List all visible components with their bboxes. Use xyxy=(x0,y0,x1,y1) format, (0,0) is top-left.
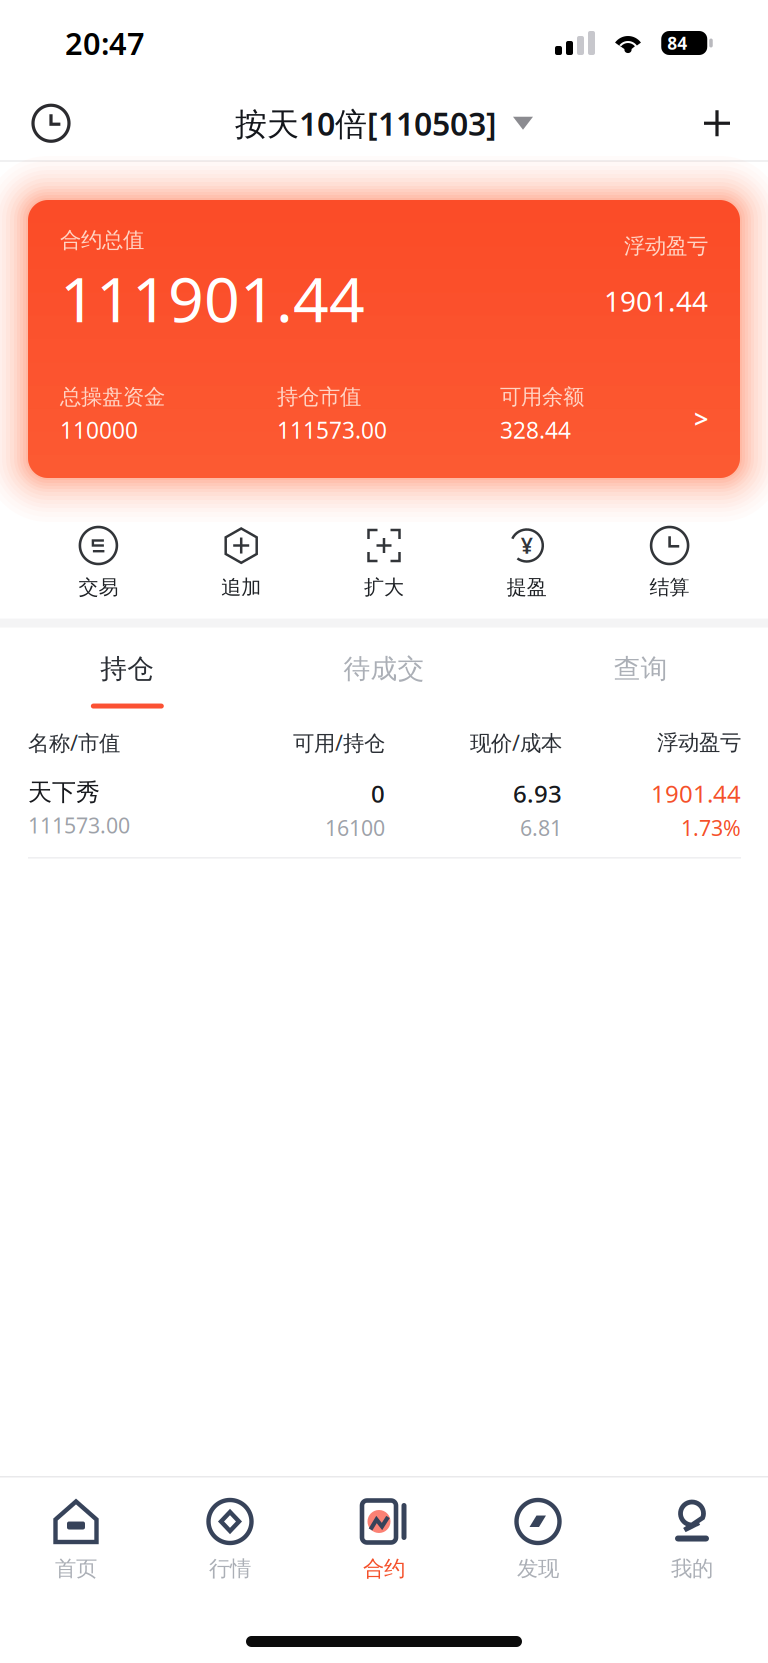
staticText: 天下秀 xyxy=(28,778,100,807)
staticText: 可用/持仓 xyxy=(293,728,385,757)
staticText: 持仓市值 xyxy=(277,384,361,410)
staticText: 浮动盈亏 xyxy=(624,233,708,259)
staticText: 111573.00 xyxy=(28,811,130,839)
staticText: 交易 xyxy=(78,575,118,600)
button[interactable]: 合约 xyxy=(307,1498,461,1582)
staticText: 110000 xyxy=(60,415,138,445)
staticText: 6.81 xyxy=(520,813,562,842)
staticText: 84 xyxy=(667,31,687,54)
button[interactable]: 交易 xyxy=(27,527,170,600)
staticText: 111573.00 xyxy=(277,415,387,445)
staticText: 111901.44 xyxy=(60,256,365,339)
staticText: 名称/市值 xyxy=(28,728,120,757)
staticText: 待成交 xyxy=(343,653,424,685)
staticText: 6.93 xyxy=(513,778,562,809)
staticText: 我的 xyxy=(671,1555,713,1582)
button[interactable]: 结算 xyxy=(598,527,741,600)
staticText: > xyxy=(694,402,708,435)
staticText: 按天10倍[110503] xyxy=(235,102,497,144)
button[interactable]: 首页 xyxy=(0,1498,153,1582)
button[interactable]: 查询 xyxy=(512,628,768,720)
button[interactable]: 追加 xyxy=(170,527,313,600)
staticText: 浮动盈亏 xyxy=(657,729,741,756)
button[interactable]: 发现 xyxy=(461,1498,615,1582)
staticText: 提盈 xyxy=(507,575,547,600)
staticText: 现价/成本 xyxy=(470,728,562,757)
staticText: 328.44 xyxy=(500,415,571,445)
staticText: 1901.44 xyxy=(651,778,741,809)
button[interactable]: 行情 xyxy=(153,1498,307,1582)
staticText: 可用余额 xyxy=(500,384,584,410)
button[interactable]: 扩大 xyxy=(313,527,455,600)
staticText: 总操盘资金 xyxy=(60,384,165,410)
button[interactable]: 持仓 xyxy=(0,628,256,720)
staticText: 1.73% xyxy=(681,813,741,842)
staticText: 1901.44 xyxy=(604,282,708,319)
staticText: 追加 xyxy=(221,575,261,600)
staticText: 查询 xyxy=(614,653,668,685)
staticText: 行情 xyxy=(209,1555,251,1582)
staticText: 16100 xyxy=(325,813,385,842)
button[interactable]: 合约总值 xyxy=(28,200,740,478)
staticText: 20:47 xyxy=(65,23,145,63)
button[interactable]: 我的 xyxy=(615,1498,768,1582)
button[interactable]: History xyxy=(17,89,85,157)
staticText: 合约 xyxy=(363,1555,405,1582)
button[interactable]: Add xyxy=(683,89,751,157)
button[interactable]: 待成交 xyxy=(256,628,512,720)
staticText: 发现 xyxy=(517,1555,559,1582)
staticText: 持仓 xyxy=(100,653,154,685)
staticText: 0 xyxy=(371,778,385,809)
button[interactable]: 天下秀 xyxy=(0,766,768,859)
staticText: ¥ xyxy=(521,531,533,560)
button[interactable]: ¥ xyxy=(455,527,598,600)
staticText: 合约总值 xyxy=(60,227,144,253)
staticText: 结算 xyxy=(650,575,690,600)
staticText: 首页 xyxy=(55,1555,97,1582)
staticText: 扩大 xyxy=(364,575,404,600)
button[interactable]: 按天10倍[110503] xyxy=(225,88,543,158)
